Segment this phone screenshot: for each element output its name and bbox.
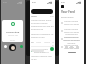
- staticText: Lorem ipsum dolor sit amet: [64, 28, 82, 34]
- button[interactable]: Answer call: [20, 45, 23, 48]
- button[interactable]: [31, 9, 53, 14]
- staticText: ▂▄▆: [47, 1, 53, 4]
- staticText: All: [31, 41, 34, 44]
- button[interactable]: End call: [9, 44, 16, 51]
- staticText: incid: [62, 46, 81, 49]
- staticText: 9:41: [32, 1, 37, 4]
- button[interactable]: Message input: [31, 49, 44, 52]
- staticText: 9:41: [61, 1, 66, 4]
- staticText: 00:04: [10, 39, 15, 42]
- staticText: Home: [44, 41, 50, 44]
- staticText: ullamco laboris nisi ut ali: [31, 55, 54, 61]
- staticText: secure call: [8, 34, 18, 37]
- button[interactable]: New message: [50, 47, 54, 51]
- staticText: Connecting: [6, 30, 20, 33]
- staticText: Today: [31, 15, 37, 18]
- staticText: ▂▄▆: [17, 1, 23, 4]
- button[interactable]: Lorem ipsum dolor sit amet: [61, 28, 82, 34]
- staticText: ▂▄▆: [76, 1, 82, 4]
- staticText: Lorem ipsum dolor sit amet: [64, 20, 82, 26]
- staticText: quis nostrud exercitation u: [34, 48, 54, 54]
- staticText: Your Feed: [61, 10, 75, 14]
- staticText: 9:41: [3, 1, 8, 4]
- staticText: adipiscing elit sed do eiusmod te: [31, 25, 54, 31]
- staticText: Recent items: [61, 16, 74, 19]
- staticText: sed do eiusmod tempor: [62, 39, 81, 45]
- button[interactable]: Lorem ipsum dolor sit amet: [61, 20, 82, 26]
- staticText: consectetur adipiscing elit: [62, 33, 81, 39]
- staticText: Lorem ipsum dolor sit amet: [64, 36, 82, 42]
- button[interactable]: Mute microphone: [4, 45, 7, 48]
- staticText: Work: [36, 41, 42, 44]
- staticText: Edit: [50, 15, 54, 18]
- staticText: tempor incididunt ut labore et dol: [31, 33, 54, 39]
- button[interactable]: Lorem ipsum dolor sit amet: [61, 44, 82, 50]
- button[interactable]: Connecting: [2, 20, 23, 42]
- staticText: Trip: [52, 41, 54, 47]
- button[interactable]: Lorem ipsum dolor sit amet: [61, 36, 82, 42]
- staticText: Lorem ipsum dolor sit amet: [64, 44, 82, 50]
- staticText: Lorem ipsum dolor sit amet consec: [31, 19, 54, 25]
